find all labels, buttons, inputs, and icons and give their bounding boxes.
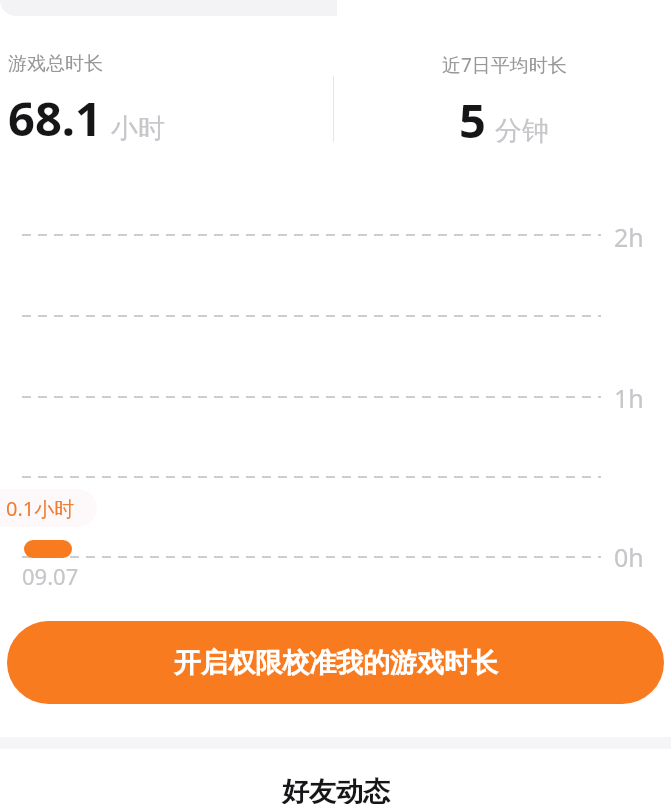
staticText: 游戏总时长 (8, 52, 103, 76)
staticText: 好友动态 (282, 775, 390, 804)
staticText: 5 (459, 88, 486, 152)
staticText: 2h (614, 220, 644, 254)
staticText: 0.1小时 (6, 495, 75, 522)
button[interactable]: 开启权限校准我的游戏时长 (7, 621, 664, 704)
staticText: 0h (614, 540, 644, 574)
staticText: 小时 (111, 112, 165, 146)
staticText: 开启权限校准我的游戏时长 (174, 646, 498, 680)
staticText: 近7日平均时长 (442, 52, 567, 78)
staticText: 1h (614, 381, 644, 415)
staticText: 09.07 (22, 561, 79, 591)
staticText: 分钟 (495, 114, 549, 148)
staticText: 68.1 (8, 86, 102, 150)
